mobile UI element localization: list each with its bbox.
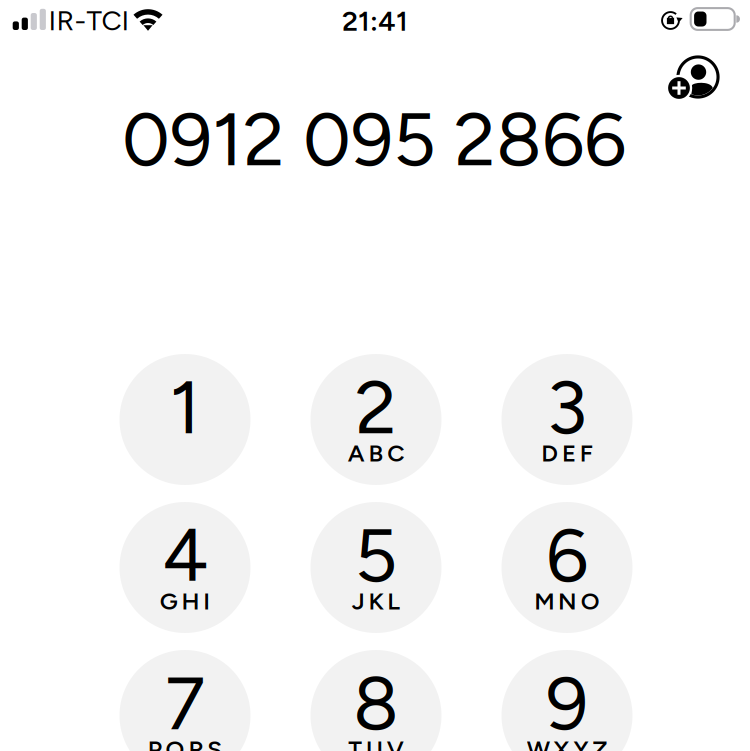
staticText: 0912 095 2866 (122, 94, 626, 184)
button[interactable]: 1 (119, 354, 250, 485)
staticText: PQRS (148, 735, 222, 751)
staticText: JKL (352, 587, 400, 615)
staticText: MNO (534, 587, 600, 615)
staticText: 4 (162, 510, 208, 600)
button[interactable]: 8 (310, 650, 441, 751)
staticText: 2 (355, 362, 397, 452)
button[interactable]: 5 (310, 502, 441, 633)
staticText: 8 (353, 658, 399, 748)
staticText: 6 (546, 510, 588, 600)
staticText: 3 (546, 362, 587, 452)
staticText: 21:41 (342, 4, 408, 38)
button[interactable]: 6 (501, 502, 632, 633)
button[interactable]: 7 (119, 650, 250, 751)
button[interactable]: 2 (310, 354, 441, 485)
staticText: ABC (348, 439, 404, 467)
button[interactable]: Add Contact (666, 51, 722, 107)
staticText: GHI (160, 587, 210, 615)
staticText: DEF (541, 439, 593, 467)
staticText: 7 (165, 658, 205, 748)
staticText: TUV (348, 735, 404, 751)
staticText: WXYZ (527, 735, 607, 751)
staticText: 9 (546, 658, 588, 748)
button[interactable]: 4 (119, 502, 250, 633)
button[interactable]: 3 (501, 354, 632, 485)
button[interactable]: 9 (501, 650, 632, 751)
staticText: 5 (354, 510, 397, 600)
staticText: 1 (169, 362, 200, 452)
staticText: IR-TCI (48, 4, 129, 37)
